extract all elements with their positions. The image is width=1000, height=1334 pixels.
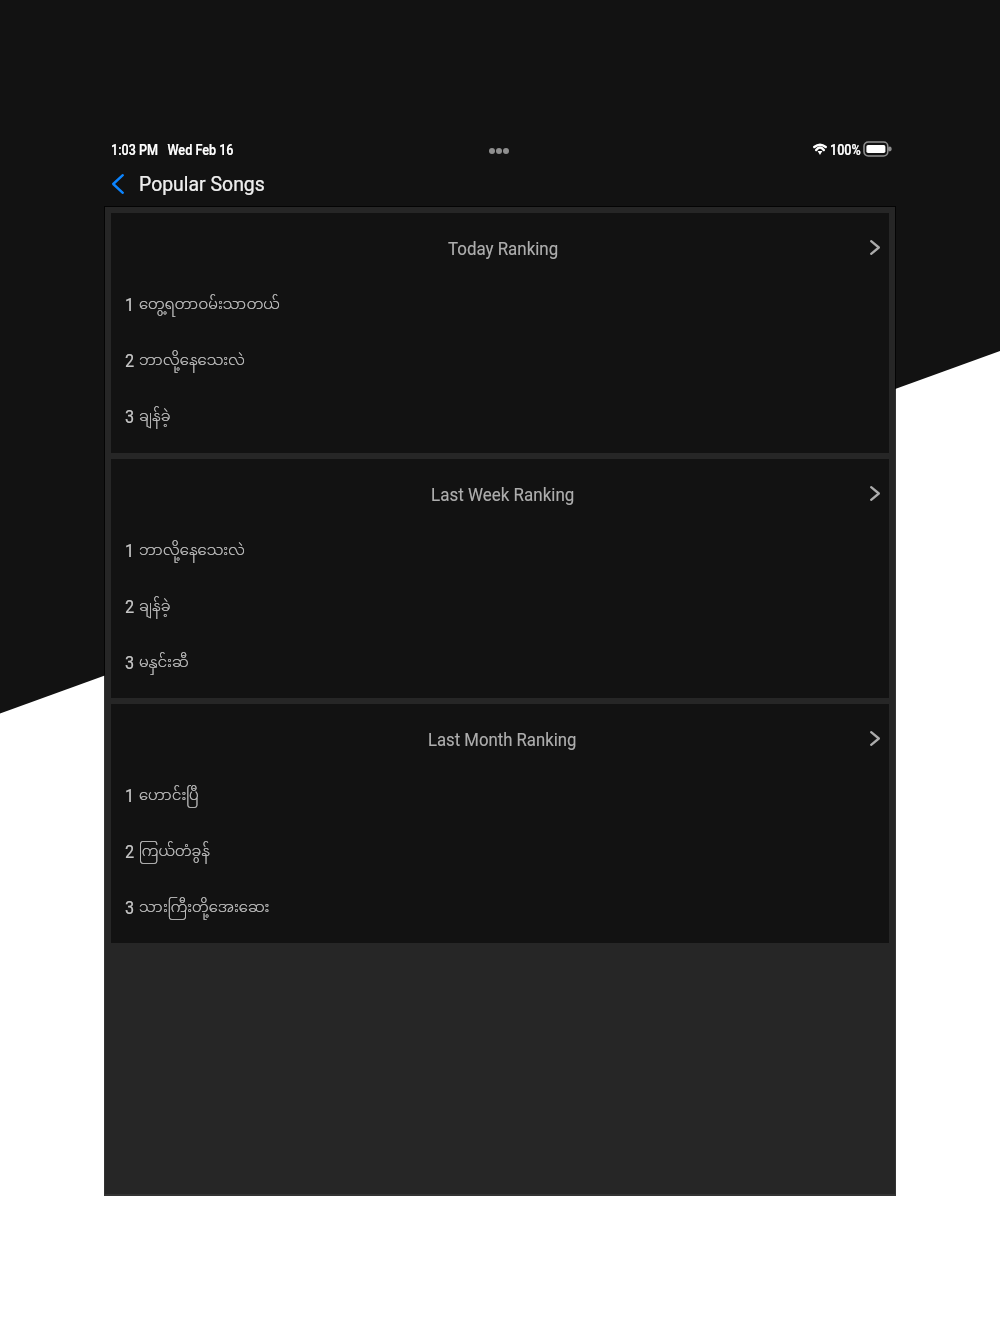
staticText: 2 (125, 597, 134, 618)
staticText: 100% (830, 142, 861, 158)
button[interactable]: 1 (111, 776, 889, 816)
staticText: 1:03 PM Wed Feb 16 (111, 142, 234, 158)
staticText: ဟောင်းပြီ (139, 785, 199, 808)
staticText: ဘာလို့နေသေးလဲ (139, 540, 245, 563)
staticText: တွေ့ရတာဝမ်းသာတယ် (139, 294, 280, 317)
staticText: Popular Songs (139, 172, 265, 197)
button[interactable]: 2 (111, 832, 889, 872)
staticText: 1 (125, 295, 134, 316)
staticText: ကြယ်တံခွန် (139, 841, 210, 864)
staticText: 3 (125, 407, 134, 428)
button[interactable]: Last Week Ranking (111, 459, 889, 698)
button[interactable]: Last Month Ranking (111, 704, 889, 943)
staticText: သားကြီးတို့အေးဆေး (139, 897, 269, 920)
button[interactable]: 3 (111, 643, 889, 683)
button[interactable]: 1 (111, 531, 889, 571)
staticText: 2 (125, 351, 134, 372)
button[interactable]: Open Last Month Ranking (870, 731, 880, 746)
staticText: 1 (125, 786, 134, 807)
staticText: မနှင်းဆီ (139, 652, 189, 675)
staticText: 3 (125, 898, 134, 919)
button[interactable]: 1 (111, 285, 889, 325)
button[interactable]: Today Ranking (111, 213, 889, 453)
button[interactable]: 2 (111, 341, 889, 381)
button[interactable]: Back (98, 163, 138, 203)
staticText: 3 (125, 653, 134, 674)
staticText: Today Ranking (448, 238, 559, 259)
button[interactable]: 3 (111, 888, 889, 928)
staticText: ချန်ခဲ့ (139, 406, 171, 429)
button[interactable]: Open Today Ranking (870, 240, 880, 255)
staticText: 2 (125, 842, 134, 863)
button[interactable]: 3 (111, 397, 889, 437)
staticText: Last Week Ranking (431, 484, 574, 505)
staticText: 1 (125, 541, 134, 562)
staticText: Last Month Ranking (428, 729, 577, 750)
staticText: ဘာလို့နေသေးလဲ (139, 350, 245, 373)
staticText: ချန်ခဲ့ (139, 596, 171, 619)
button[interactable]: Open Last Week Ranking (870, 486, 880, 501)
button[interactable]: 2 (111, 587, 889, 627)
button[interactable]: Popular Songs (139, 172, 275, 197)
